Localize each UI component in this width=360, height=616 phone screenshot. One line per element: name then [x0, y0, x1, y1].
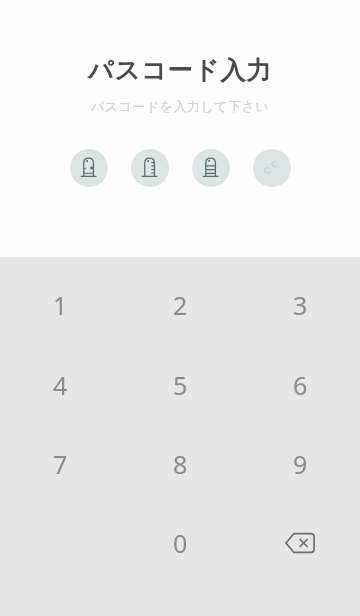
staticText: パスコード入力 — [0, 55, 360, 86]
button[interactable]: 6 — [240, 345, 360, 424]
button[interactable]: 4 — [0, 345, 120, 424]
button[interactable]: 8 — [120, 424, 240, 503]
staticText: 7 — [53, 447, 68, 481]
staticText: 9 — [293, 447, 308, 481]
staticText: パスコードを入力して下さい — [0, 98, 360, 114]
staticText: 8 — [173, 447, 188, 481]
staticText: 6 — [293, 368, 308, 402]
button[interactable]: 7 — [0, 424, 120, 503]
staticText: 1 — [53, 288, 68, 322]
staticText: 2 — [173, 288, 188, 322]
button[interactable]: 3 — [240, 265, 360, 345]
staticText: 4 — [53, 368, 68, 402]
staticText: 3 — [293, 288, 308, 322]
button[interactable]: 5 — [120, 345, 240, 424]
button[interactable]: 0 — [120, 503, 240, 582]
staticText: 0 — [173, 526, 188, 560]
button[interactable]: 1 — [0, 265, 120, 345]
staticText: 5 — [173, 368, 188, 402]
button[interactable]: Backspace — [240, 503, 360, 582]
button[interactable]: 2 — [120, 265, 240, 345]
button[interactable]: 9 — [240, 424, 360, 503]
